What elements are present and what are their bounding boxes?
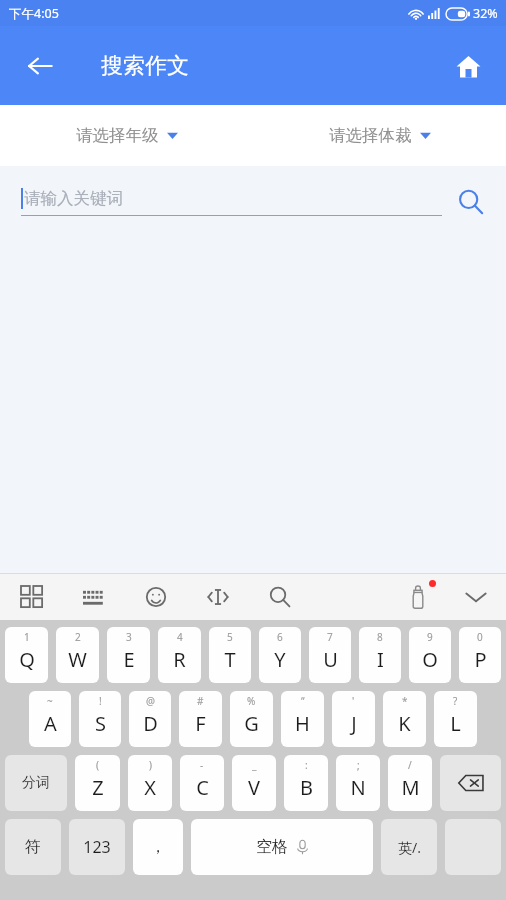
staticText: Y: [274, 646, 286, 673]
staticText: ;: [357, 758, 360, 772]
button[interactable]: (: [75, 755, 120, 811]
button[interactable]: 123: [69, 819, 125, 875]
staticText: R: [173, 646, 186, 673]
staticText: Z: [92, 774, 104, 801]
staticText: 请输入关键词: [24, 188, 123, 209]
staticText: 32%: [473, 5, 498, 22]
staticText: 分词: [22, 774, 50, 792]
button[interactable]: Search: [260, 577, 300, 617]
staticText: @: [146, 694, 155, 708]
button[interactable]: Emoji: [136, 577, 176, 617]
staticText: D: [143, 710, 158, 737]
button[interactable]: @: [129, 691, 171, 747]
button[interactable]: 符: [5, 819, 61, 875]
button[interactable]: 分词: [5, 755, 67, 811]
staticText: M: [401, 774, 420, 801]
staticText: 2: [75, 630, 81, 644]
staticText: *: [402, 694, 408, 708]
staticText: 搜索作文: [101, 52, 189, 80]
button[interactable]: 8: [359, 627, 401, 683]
staticText: 1: [24, 630, 30, 644]
button[interactable]: *: [383, 691, 426, 747]
staticText: W: [68, 646, 87, 673]
staticText: 3: [126, 630, 132, 644]
staticText: T: [224, 646, 236, 673]
staticText: 4: [177, 630, 183, 644]
button[interactable]: 请输入关键词: [21, 188, 442, 216]
button[interactable]: ，: [133, 819, 183, 875]
button[interactable]: Keyboard layout: [74, 577, 114, 617]
staticText: H: [295, 710, 310, 737]
button[interactable]: 4: [158, 627, 201, 683]
staticText: !: [99, 694, 102, 708]
button[interactable]: ?: [434, 691, 477, 747]
staticText: 7: [327, 630, 333, 644]
button[interactable]: 请选择体裁: [323, 119, 437, 152]
button[interactable]: Backspace: [440, 755, 501, 811]
button[interactable]: 1: [5, 627, 48, 683]
staticText: 5: [227, 630, 233, 644]
staticText: 6: [277, 630, 283, 644]
staticText: O: [422, 646, 438, 673]
button[interactable]: %: [230, 691, 273, 747]
button[interactable]: _: [232, 755, 276, 811]
staticText: J: [351, 710, 357, 737]
button[interactable]: Search: [450, 181, 492, 223]
staticText: 请选择年级: [76, 125, 159, 146]
button[interactable]: 0: [459, 627, 501, 683]
button[interactable]: ~: [29, 691, 71, 747]
staticText: F: [195, 710, 206, 737]
button[interactable]: Home: [442, 40, 494, 92]
button[interactable]: -: [180, 755, 224, 811]
button[interactable]: ): [128, 755, 172, 811]
staticText: Q: [19, 646, 35, 673]
staticText: “: [301, 694, 305, 708]
staticText: 空格: [256, 837, 288, 857]
button[interactable]: 5: [209, 627, 251, 683]
staticText: 英/.: [398, 838, 421, 857]
button[interactable]: 6: [259, 627, 301, 683]
staticText: 9: [427, 630, 433, 644]
staticText: I: [377, 646, 384, 673]
button[interactable]: 3: [107, 627, 150, 683]
staticText: ~: [47, 694, 53, 708]
staticText: ，: [150, 837, 166, 857]
staticText: U: [323, 646, 338, 673]
button[interactable]: ;: [336, 755, 380, 811]
button[interactable]: 空格: [191, 819, 373, 875]
button[interactable]: 英/.: [381, 819, 437, 875]
staticText: 下午4:05: [9, 5, 59, 22]
staticText: N: [350, 774, 366, 801]
staticText: C: [196, 774, 209, 801]
staticText: 0: [477, 630, 483, 644]
staticText: /: [408, 758, 412, 772]
staticText: K: [398, 710, 411, 737]
button[interactable]: /: [388, 755, 432, 811]
button[interactable]: 7: [309, 627, 351, 683]
button[interactable]: Move cursor: [198, 577, 238, 617]
staticText: 123: [83, 836, 111, 858]
button[interactable]: 2: [56, 627, 99, 683]
staticText: X: [144, 774, 156, 801]
staticText: -: [200, 758, 204, 772]
staticText: G: [244, 710, 259, 737]
staticText: 请选择体裁: [329, 125, 412, 146]
button[interactable]: #: [179, 691, 222, 747]
button[interactable]: Theme: [398, 577, 438, 617]
staticText: #: [197, 694, 204, 708]
button[interactable]: :: [284, 755, 328, 811]
staticText: ): [149, 758, 152, 772]
staticText: 8: [377, 630, 383, 644]
button[interactable]: 9: [409, 627, 451, 683]
staticText: 符: [25, 837, 41, 857]
button[interactable]: “: [281, 691, 324, 747]
button[interactable]: 请选择年级: [70, 119, 184, 152]
staticText: B: [300, 774, 313, 801]
button[interactable]: Apps: [12, 577, 52, 617]
button[interactable]: Back: [14, 40, 66, 92]
button[interactable]: !: [79, 691, 121, 747]
staticText: V: [248, 774, 260, 801]
button[interactable]: Hide keyboard: [456, 577, 496, 617]
button[interactable]: ': [332, 691, 375, 747]
